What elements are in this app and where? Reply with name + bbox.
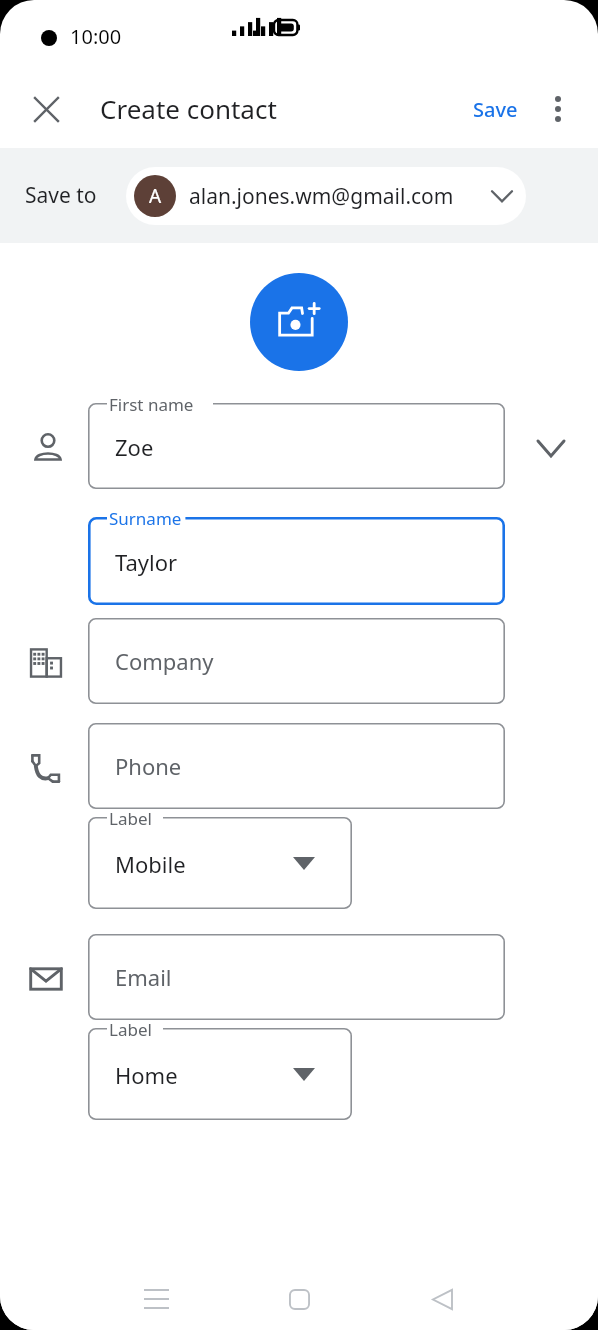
staticText: Label (109, 807, 152, 830)
button[interactable]: Add photo (250, 273, 348, 371)
staticText: Label (109, 1018, 152, 1041)
button[interactable]: Company (88, 618, 505, 704)
staticText: A (149, 183, 162, 209)
button[interactable]: More options (535, 86, 581, 132)
button[interactable]: Phone (88, 723, 505, 809)
staticText: 10:00 (70, 23, 122, 50)
staticText: alan.jones.wm@gmail.com (189, 182, 454, 211)
staticText: Mobile (115, 849, 186, 879)
button[interactable]: Close (22, 85, 70, 133)
staticText: Zoe (115, 432, 154, 462)
staticText: Email (115, 962, 172, 992)
staticText: Home (115, 1060, 178, 1090)
button[interactable]: Home (272, 1272, 326, 1326)
staticText: First name (109, 393, 194, 416)
button[interactable]: Expand name fields (528, 425, 574, 471)
staticText: Phone (115, 751, 182, 781)
button[interactable]: Recent apps (129, 1272, 183, 1326)
button[interactable]: Save (465, 90, 526, 129)
button[interactable]: A (126, 167, 526, 225)
staticText: Taylor (115, 547, 178, 577)
staticText: Surname (109, 507, 182, 530)
staticText: Save (473, 96, 518, 123)
staticText: Company (115, 646, 214, 676)
staticText: Create contact (100, 91, 277, 126)
staticText: Save to (25, 181, 97, 210)
button[interactable]: Label Home (88, 1028, 352, 1120)
button[interactable]: Email (88, 934, 505, 1020)
button[interactable]: Label Mobile (88, 817, 352, 909)
button[interactable]: Back (415, 1272, 469, 1326)
